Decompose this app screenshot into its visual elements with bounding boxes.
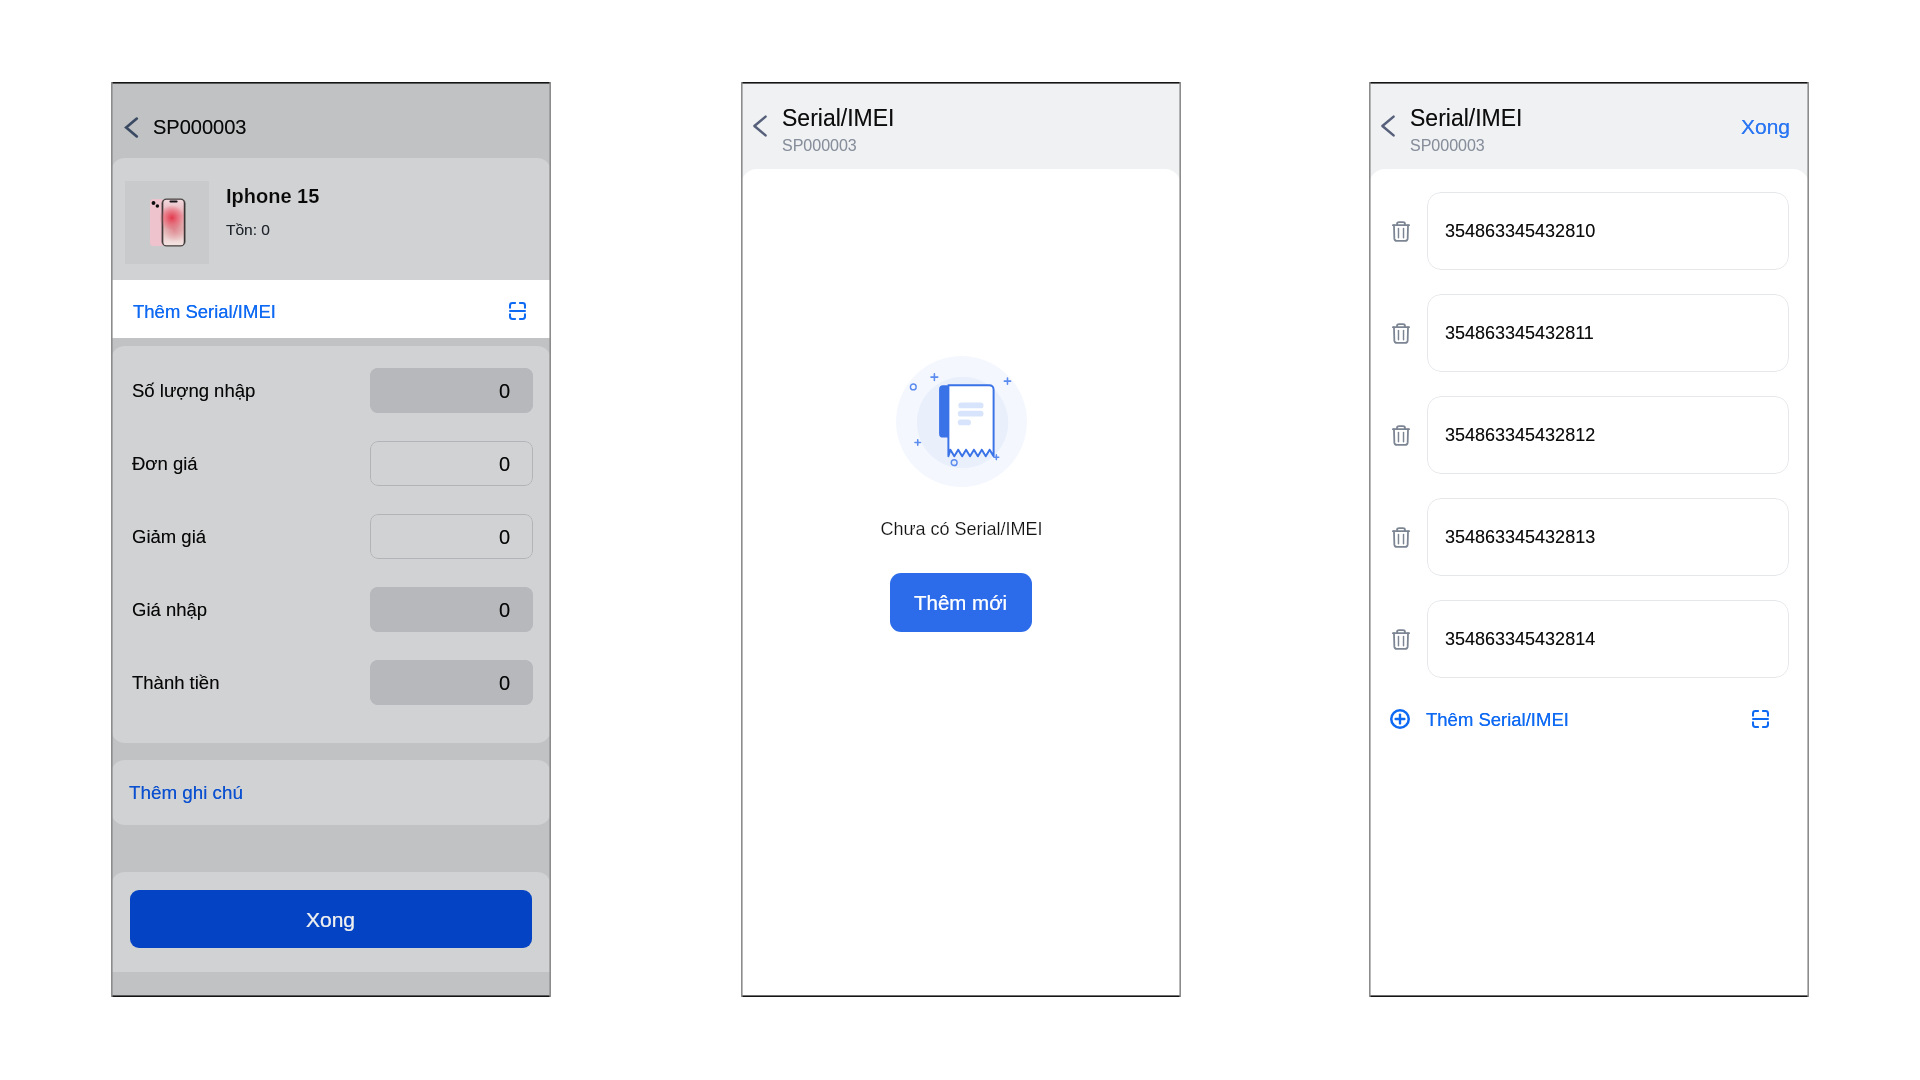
staticText: Thêm mới: [914, 591, 1008, 614]
staticText: 0: [499, 380, 511, 402]
button[interactable]: Delete serial: [1389, 321, 1413, 345]
staticText: Đơn giá: [132, 453, 198, 474]
staticText: Serial/IMEI: [1410, 105, 1523, 131]
staticText: 0: [499, 453, 511, 475]
button[interactable]: 354863345432814: [1427, 600, 1789, 678]
staticText: 354863345432812: [1445, 425, 1596, 445]
staticText: Số lượng nhập: [132, 380, 256, 401]
button[interactable]: 0: [370, 660, 533, 705]
button[interactable]: Xong: [130, 890, 532, 948]
staticText: Serial/IMEI: [1410, 105, 1523, 131]
staticText: 0: [499, 526, 511, 548]
staticText: Xong: [1741, 115, 1791, 138]
staticText: Thành tiền: [132, 672, 220, 693]
button[interactable]: 0: [370, 368, 533, 413]
staticText: Thêm Serial/IMEI: [1426, 709, 1569, 730]
staticText: 354863345432813: [1445, 527, 1596, 547]
button[interactable]: SP000003: [111, 82, 551, 158]
staticText: SP000003: [153, 116, 247, 138]
staticText: SP000003: [1410, 137, 1485, 155]
button[interactable]: Thêm ghi chú: [111, 760, 551, 825]
button[interactable]: 354863345432810: [1427, 192, 1789, 270]
staticText: Serial/IMEI: [782, 105, 895, 131]
staticText: Xong: [1741, 115, 1791, 138]
button[interactable]: Delete serial: [1389, 423, 1413, 447]
button[interactable]: Delete serial: [1389, 525, 1413, 549]
staticText: Đơn giá: [132, 453, 198, 474]
staticText: Thêm ghi chú: [129, 782, 243, 803]
staticText: 354863345432811: [1445, 323, 1594, 343]
staticText: SP000003: [782, 137, 857, 155]
staticText: Chưa có Serial/IMEI: [880, 519, 1043, 539]
staticText: Thêm Serial/IMEI: [133, 301, 276, 322]
staticText: 354863345432814: [1445, 629, 1596, 649]
staticText: 354863345432810: [1445, 221, 1596, 241]
button[interactable]: Back: [746, 112, 774, 140]
staticText: Giá nhập: [132, 599, 208, 620]
staticText: 0: [499, 599, 511, 621]
staticText: Thành tiền: [132, 672, 220, 693]
button[interactable]: Thêm Serial/IMEI: [1369, 690, 1809, 752]
button[interactable]: 354863345432813: [1427, 498, 1789, 576]
staticText: 0: [499, 380, 511, 402]
button[interactable]: Delete serial: [1389, 627, 1413, 651]
button[interactable]: Thêm Serial/IMEI: [111, 280, 551, 338]
button[interactable]: 0: [370, 587, 533, 632]
button[interactable]: 0: [370, 514, 533, 559]
button[interactable]: 354863345432812: [1427, 396, 1789, 474]
staticText: Xong: [306, 908, 356, 931]
staticText: Tồn: 0: [226, 221, 270, 238]
staticText: Serial/IMEI: [782, 105, 895, 131]
staticText: 0: [499, 672, 511, 694]
staticText: Số lượng nhập: [132, 380, 256, 401]
staticText: SP000003: [153, 116, 247, 138]
staticText: Giảm giá: [132, 526, 207, 547]
staticText: Giá nhập: [132, 599, 208, 620]
staticText: 0: [499, 672, 511, 694]
staticText: Thêm Serial/IMEI: [133, 301, 276, 322]
staticText: Giảm giá: [132, 526, 207, 547]
staticText: 0: [499, 453, 511, 475]
staticText: 354863345432810: [1445, 221, 1596, 241]
staticText: 354863345432811: [1445, 323, 1594, 343]
staticText: 354863345432814: [1445, 629, 1596, 649]
button[interactable]: 0: [370, 441, 533, 486]
staticText: Thêm ghi chú: [129, 782, 243, 803]
staticText: 0: [499, 526, 511, 548]
button[interactable]: 354863345432811: [1427, 294, 1789, 372]
staticText: 354863345432812: [1445, 425, 1596, 445]
staticText: Iphone 15: [226, 185, 320, 207]
button[interactable]: Delete serial: [1389, 219, 1413, 243]
staticText: Tồn: 0: [226, 221, 270, 238]
button[interactable]: Thêm mới: [890, 573, 1032, 632]
staticText: Thêm Serial/IMEI: [1426, 709, 1569, 730]
staticText: 354863345432813: [1445, 527, 1596, 547]
button[interactable]: Back: [1374, 112, 1402, 140]
staticText: 0: [499, 599, 511, 621]
button[interactable]: Xong: [1723, 107, 1809, 146]
